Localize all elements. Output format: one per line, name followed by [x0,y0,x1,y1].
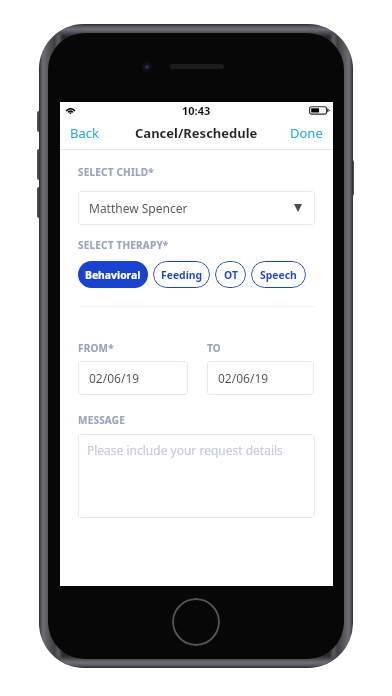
staticText: TO [207,341,221,355]
button[interactable]: Back [60,121,109,145]
button[interactable]: Done [280,121,333,145]
staticText: SELECT THERAPY* [78,238,169,252]
staticText: 02/06/19 [89,370,140,386]
button[interactable]: 02/06/19 [78,361,188,395]
staticText: Speech [260,268,297,282]
staticText: 02/06/19 [218,370,269,386]
staticText: OT [224,268,238,282]
staticText: Done [290,124,323,142]
staticText: MESSAGE [78,413,126,427]
button[interactable]: 02/06/19 [207,361,314,395]
button[interactable]: Speech [251,261,306,288]
staticText: Please include your request details [87,442,283,458]
button[interactable]: Please include your request details [78,434,315,518]
staticText: Behavioral [85,268,141,282]
staticText: Cancel/Reschedule [135,124,258,142]
staticText: Feeding [161,268,203,282]
staticText: 10:43 [182,103,211,118]
staticText: Matthew Spencer [89,200,188,216]
button[interactable]: Matthew Spencer [78,191,315,225]
staticText: Back [70,124,99,142]
button[interactable]: Feeding [153,261,210,288]
button[interactable]: OT [215,261,246,288]
staticText: FROM* [78,341,114,355]
staticText: SELECT CHILD* [78,165,154,179]
button[interactable]: Behavioral [78,261,148,288]
